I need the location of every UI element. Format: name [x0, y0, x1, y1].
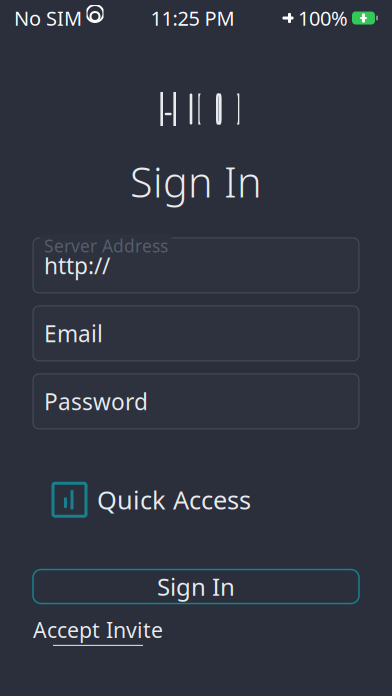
staticText: 11:25 PM	[150, 5, 234, 31]
staticText: 100%	[298, 5, 348, 31]
staticText: Quick Access	[97, 483, 251, 516]
staticText: Sign In	[157, 571, 235, 602]
staticText: Sign In	[130, 154, 262, 209]
button[interactable]: Accept Invite	[33, 615, 163, 646]
staticText: Email	[44, 318, 103, 348]
staticText: Server Address	[44, 234, 168, 257]
button[interactable]: Sign In	[33, 569, 359, 603]
staticText: http://	[44, 250, 110, 280]
staticText: Password	[44, 386, 148, 416]
staticText: Accept Invite	[33, 615, 163, 644]
button[interactable]: Quick Access	[0, 483, 392, 516]
staticText: No SIM	[14, 5, 82, 31]
